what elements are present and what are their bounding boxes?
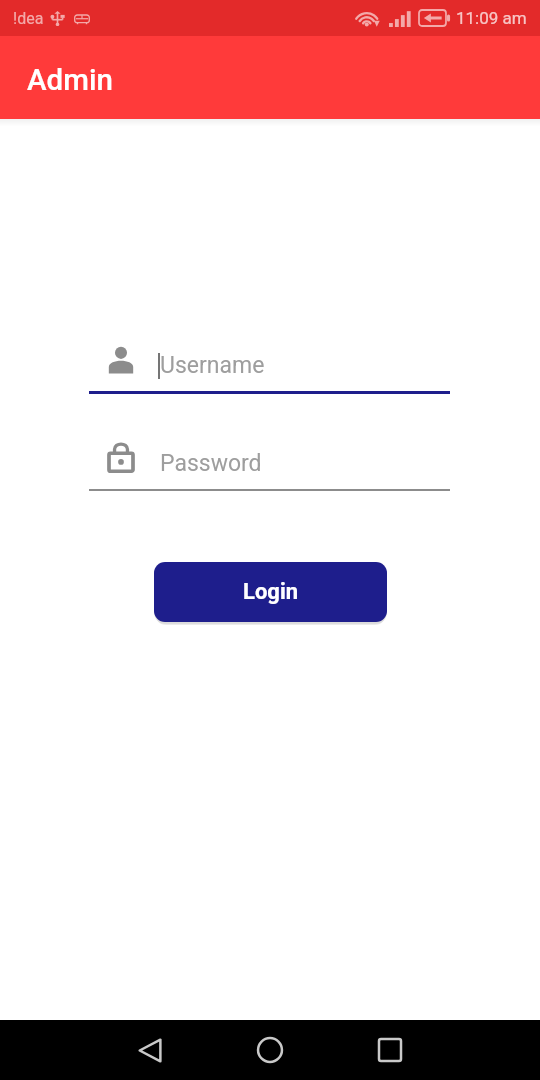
- staticText: Username: [160, 352, 265, 379]
- button[interactable]: Password: [89, 441, 450, 491]
- button[interactable]: Login: [154, 562, 387, 622]
- staticText: 11:09 am: [456, 8, 527, 28]
- button[interactable]: Back: [120, 1020, 180, 1080]
- staticText: !dea: [13, 9, 44, 28]
- staticText: Login: [243, 579, 299, 605]
- button[interactable]: Username: [89, 343, 450, 394]
- button[interactable]: Recents: [360, 1020, 420, 1080]
- staticText: Password: [160, 450, 262, 477]
- staticText: Admin: [27, 63, 113, 98]
- button[interactable]: Home: [240, 1020, 300, 1080]
